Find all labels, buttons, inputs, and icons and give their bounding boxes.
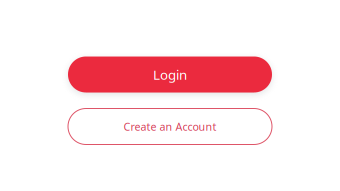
button[interactable]: Login [68,56,272,92]
button[interactable]: Create an Account [68,108,272,144]
staticText: Login [153,66,187,83]
staticText: Create an Account [123,119,216,134]
